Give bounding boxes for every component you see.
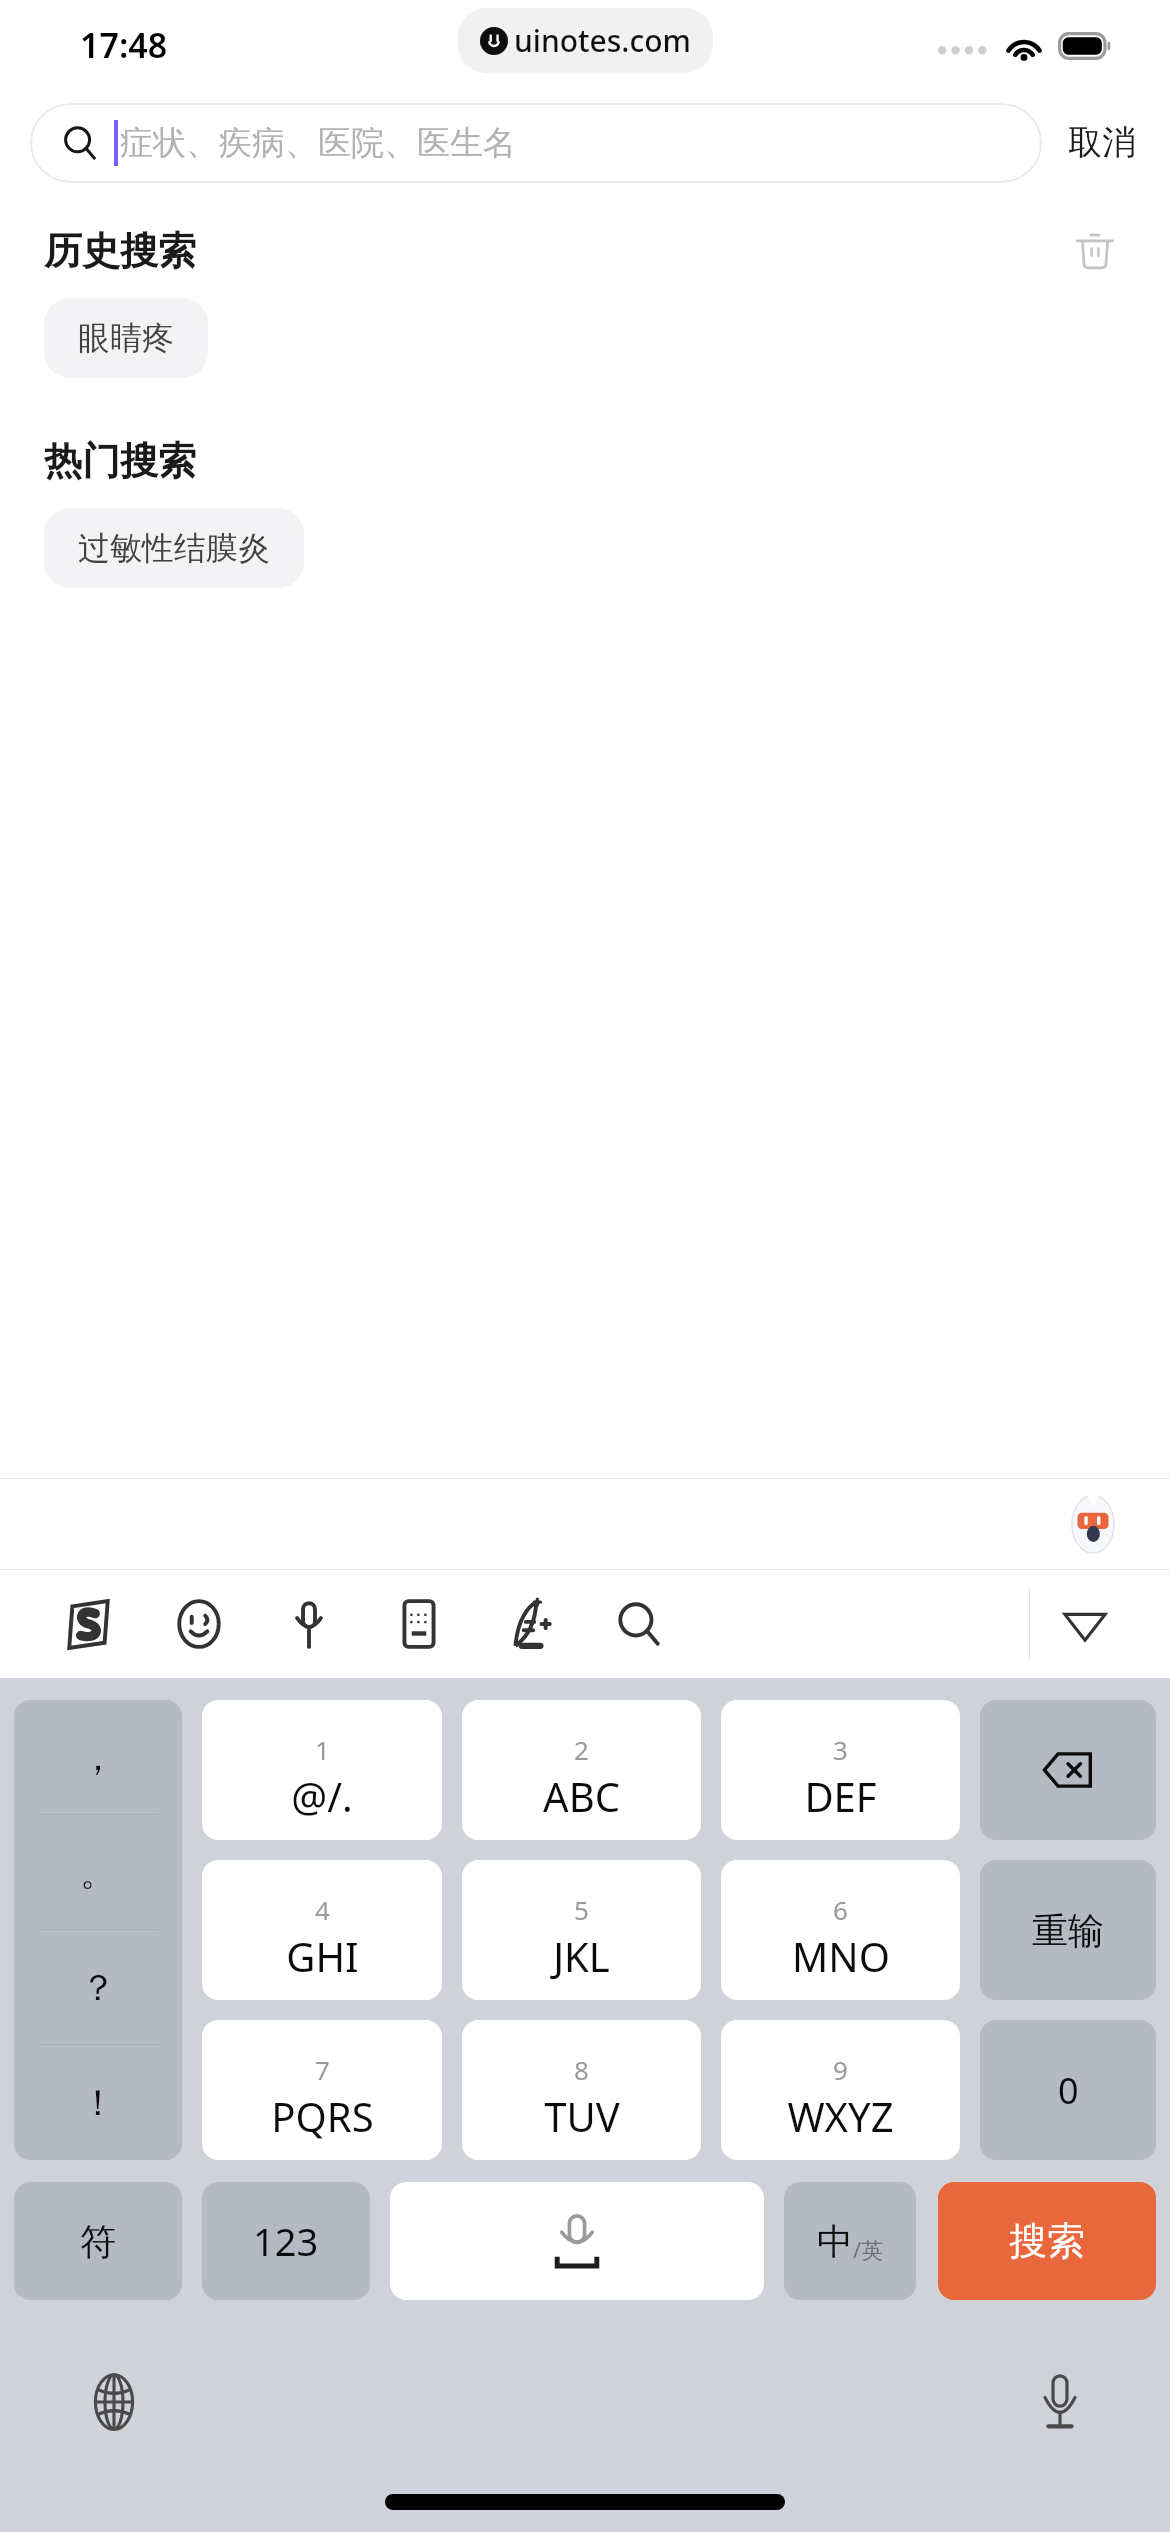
staticText: ？ [80,1965,116,2010]
button[interactable]: 4 [202,1860,442,2000]
button[interactable]: ！ [14,2045,182,2160]
staticText: 符 [80,2219,116,2264]
staticText: 历史搜索 [44,227,196,275]
staticText: ABC [543,1769,620,1823]
staticText: JKL [553,1929,610,1983]
button[interactable]: 语音输入 [254,1570,364,1678]
staticText: GHI [286,1929,359,1983]
button[interactable]: 搜狗输入法 [34,1570,144,1678]
button[interactable]: 2 [462,1700,701,1840]
button[interactable]: 。 [14,1815,182,1930]
button[interactable]: 表情 [144,1570,254,1678]
staticText: 症状、疾病、医院、医生名 [120,122,516,164]
staticText: @/. [291,1769,353,1823]
staticText: 123 [253,2215,319,2267]
button[interactable]: 手写输入 [474,1570,584,1678]
staticText: WXYZ [787,2089,894,2143]
button[interactable]: 症状、疾病、医院、医生名 [30,103,1042,183]
staticText: 过敏性结膜炎 [78,528,270,568]
staticText: 3 [833,1732,848,1767]
button[interactable]: 切换语言 [78,2366,150,2438]
staticText: /英 [853,2234,884,2264]
staticText: 。 [80,1850,116,1895]
button[interactable]: 过敏性结膜炎 [44,508,304,588]
staticText: 取消 [1068,121,1136,164]
button[interactable]: 7 [202,2020,442,2160]
staticText: DEF [804,1769,877,1823]
staticText: 中 [817,2219,853,2264]
button[interactable]: 清除历史搜索 [1064,224,1126,278]
button[interactable]: 6 [721,1860,960,2000]
button[interactable]: 键盘设置 [364,1570,474,1678]
staticText: 眼睛疼 [78,318,174,358]
staticText: 4 [315,1892,330,1927]
button[interactable]: 0 [980,2020,1156,2160]
button[interactable]: 退格 [980,1700,1156,1840]
button[interactable]: 语音输入 [1024,2366,1096,2438]
staticText: 0 [1058,2066,1079,2115]
staticText: MNO [792,1929,890,1983]
staticText: 17:48 [80,22,168,68]
button[interactable]: 取消 [1042,111,1140,174]
staticText: 7 [315,2052,330,2087]
button[interactable]: 眼睛疼 [44,298,208,378]
staticText: 热门搜索 [44,437,196,485]
staticText: PQRS [271,2089,374,2143]
button[interactable]: 8 [462,2020,701,2160]
button[interactable]: 1 [202,1700,442,1840]
button[interactable]: 3 [721,1700,960,1840]
staticText: ， [80,1735,116,1780]
staticText: 8 [574,2052,589,2087]
button[interactable]: 5 [462,1860,701,2000]
staticText: 9 [833,2052,848,2087]
staticText: 6 [833,1892,848,1927]
staticText: 重输 [1032,1908,1104,1953]
button[interactable]: ， [14,1700,182,1815]
button[interactable]: 123 [202,2182,370,2300]
button[interactable]: 收起键盘 [1030,1570,1140,1678]
staticText: 1 [315,1732,330,1767]
button[interactable]: 符 [14,2182,182,2300]
button[interactable]: 空格 [390,2182,764,2300]
button[interactable]: 9 [721,2020,960,2160]
button[interactable]: 中英文切换 [784,2182,916,2300]
staticText: ！ [80,2080,116,2125]
button[interactable]: 搜索 [584,1570,694,1678]
staticText: TUV [544,2089,620,2143]
button[interactable]: 搜索 [938,2182,1156,2300]
button[interactable]: 输入法助手 [1058,1489,1128,1559]
button[interactable]: 重输 [980,1860,1156,2000]
staticText: 2 [574,1732,589,1767]
button[interactable]: ？ [14,1930,182,2045]
staticText: 搜索 [1009,2217,1085,2265]
staticText: uinotes.com [514,20,691,61]
staticText: 5 [574,1892,589,1927]
